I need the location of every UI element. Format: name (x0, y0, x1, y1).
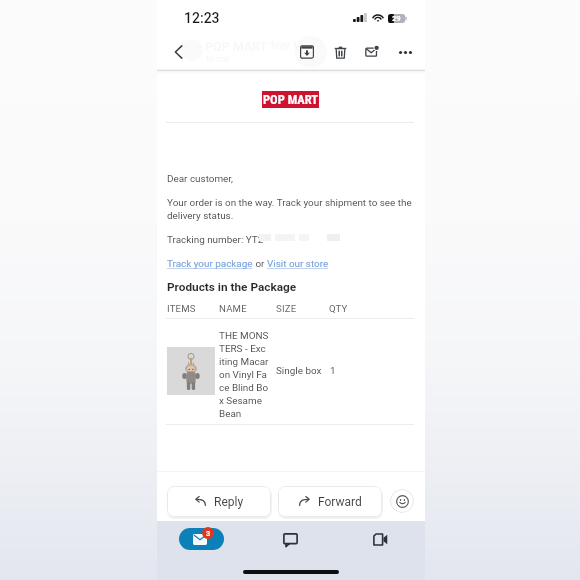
staticText: Reply (214, 495, 244, 509)
staticText: Your order is on the way. Track your shi… (167, 197, 417, 222)
staticText: Single box (276, 365, 322, 377)
button[interactable]: Archive (292, 37, 322, 67)
button[interactable]: Emoji reaction (390, 489, 414, 513)
staticText: THE MONS TERS - Exc iting Macar on Vinyl… (219, 330, 269, 420)
button[interactable]: Delete (325, 37, 355, 67)
staticText: Track your package (167, 258, 253, 270)
staticText: Visit our store (267, 258, 329, 270)
button[interactable]: Track your package (167, 258, 253, 270)
staticText: May 10 (271, 40, 304, 52)
staticText: 1 (330, 365, 336, 377)
staticText: SIZE (276, 303, 297, 314)
staticText: QTY (329, 303, 348, 314)
button[interactable]: Video call (365, 524, 396, 555)
staticText: ITEMS (167, 303, 196, 314)
button[interactable]: More options (390, 37, 420, 67)
button[interactable]: Reply (167, 486, 271, 517)
staticText: Tracking number: YT2 (167, 234, 264, 246)
button[interactable]: Visit our store (267, 258, 329, 270)
staticText: POP MART (263, 92, 319, 107)
staticText: 12:23 (184, 10, 220, 26)
button[interactable]: Chat (275, 524, 306, 555)
staticText: Dear customer, (167, 173, 234, 185)
button[interactable]: Forward (278, 486, 382, 517)
staticText: 3 (206, 529, 211, 538)
staticText: Forward (318, 495, 362, 509)
staticText: or (253, 258, 267, 270)
staticText: Products in the Package (167, 280, 297, 294)
button[interactable]: Mark unread (357, 37, 387, 67)
staticText: 29 (392, 14, 401, 23)
staticText: NAME (219, 303, 247, 314)
button[interactable]: Back (162, 35, 195, 68)
button[interactable]: Mail (179, 528, 224, 550)
